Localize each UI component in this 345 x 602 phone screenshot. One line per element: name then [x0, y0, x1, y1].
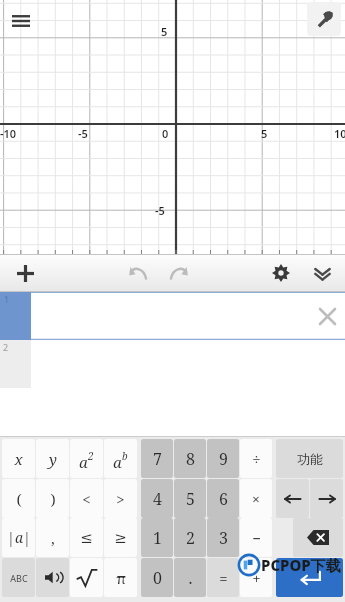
- button[interactable]: 功能: [276, 439, 343, 478]
- button[interactable]: ÷: [240, 439, 272, 478]
- staticText: 5: [186, 488, 195, 510]
- button[interactable]: 5: [174, 479, 206, 518]
- button[interactable]: ×: [240, 479, 272, 518]
- button[interactable]: 0: [141, 558, 173, 597]
- staticText: 0: [162, 126, 169, 141]
- button[interactable]: x: [2, 439, 35, 478]
- staticText: +: [252, 568, 261, 588]
- staticText: −: [252, 528, 261, 548]
- button[interactable]: Audio: [36, 558, 69, 597]
- button[interactable]: 7: [141, 439, 173, 478]
- button[interactable]: Enter: [276, 558, 343, 597]
- staticText: 0: [153, 567, 162, 589]
- button[interactable]: 8: [174, 439, 206, 478]
- button[interactable]: 2: [174, 518, 206, 557]
- staticText: ≤: [80, 529, 93, 546]
- staticText: 2: [186, 527, 195, 549]
- button[interactable]: 6: [207, 479, 239, 518]
- staticText: 1: [153, 527, 162, 549]
- button[interactable]: Undo: [118, 254, 158, 292]
- button[interactable]: ,: [36, 518, 69, 557]
- staticText: 3: [219, 527, 228, 549]
- staticText: 6: [219, 488, 228, 510]
- staticText: -10: [0, 126, 17, 141]
- staticText: x: [14, 449, 23, 469]
- button[interactable]: 1: [0, 292, 345, 340]
- button[interactable]: .: [174, 558, 206, 597]
- staticText: PCPOP下载: [261, 555, 341, 575]
- staticText: <: [82, 489, 91, 509]
- button[interactable]: Backspace: [293, 518, 343, 557]
- staticText: 2: [3, 341, 9, 353]
- staticText: 功能: [297, 451, 323, 467]
- button[interactable]: Redo: [159, 254, 199, 292]
- staticText: 7: [153, 448, 162, 470]
- button[interactable]: ABC: [2, 558, 35, 597]
- button[interactable]: ): [36, 479, 69, 518]
- button[interactable]: Collapse: [303, 254, 341, 292]
- button[interactable]: a: [70, 439, 103, 478]
- button[interactable]: Settings: [261, 254, 301, 292]
- button[interactable]: 4: [141, 479, 173, 518]
- button[interactable]: 1: [141, 518, 173, 557]
- button[interactable]: Graph settings: [307, 2, 341, 36]
- button[interactable]: ≤: [70, 518, 103, 557]
- button[interactable]: |a|: [2, 518, 35, 557]
- button[interactable]: Delete expression: [311, 300, 343, 332]
- button[interactable]: >: [104, 479, 137, 518]
- button[interactable]: <: [70, 479, 103, 518]
- staticText: 8: [186, 448, 195, 470]
- button[interactable]: Move cursor left: [276, 479, 309, 518]
- staticText: |a|: [7, 528, 31, 547]
- staticText: >: [116, 489, 125, 509]
- staticText: a: [113, 452, 122, 472]
- button[interactable]: a: [104, 439, 137, 478]
- staticText: 9: [219, 448, 228, 470]
- button[interactable]: Menu: [4, 4, 38, 38]
- staticText: (: [16, 489, 22, 509]
- staticText: =: [219, 568, 228, 588]
- staticText: 2: [88, 449, 94, 463]
- staticText: ×: [252, 490, 260, 508]
- button[interactable]: 3: [207, 518, 239, 557]
- staticText: π: [116, 568, 126, 588]
- staticText: ,: [51, 528, 55, 548]
- staticText: a: [79, 452, 88, 472]
- button[interactable]: −: [240, 518, 272, 557]
- staticText: ): [50, 489, 56, 509]
- button[interactable]: Square root: [70, 558, 103, 597]
- staticText: -5: [78, 126, 88, 141]
- staticText: ≥: [114, 529, 127, 546]
- staticText: -5: [155, 203, 165, 218]
- button[interactable]: 2: [0, 340, 345, 388]
- staticText: ÷: [252, 449, 261, 469]
- staticText: 5: [161, 24, 168, 39]
- button[interactable]: π: [104, 558, 137, 597]
- staticText: 4: [153, 488, 162, 510]
- staticText: 5: [261, 126, 268, 141]
- staticText: b: [122, 449, 128, 463]
- staticText: y: [49, 449, 57, 469]
- button[interactable]: 9: [207, 439, 239, 478]
- staticText: 1: [4, 293, 10, 305]
- button[interactable]: Add expression: [6, 254, 44, 292]
- button[interactable]: +: [240, 558, 272, 597]
- button[interactable]: =: [207, 558, 239, 597]
- button[interactable]: y: [36, 439, 69, 478]
- button[interactable]: ≥: [104, 518, 137, 557]
- staticText: .: [188, 567, 193, 589]
- staticText: 10: [334, 126, 345, 141]
- staticText: ABC: [10, 572, 28, 584]
- button[interactable]: (: [2, 479, 35, 518]
- button[interactable]: Move cursor right: [310, 479, 343, 518]
